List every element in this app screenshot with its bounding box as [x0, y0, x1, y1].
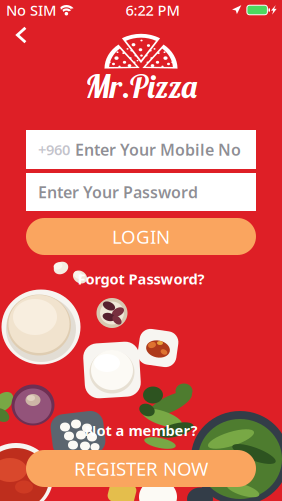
staticText: +960 — [38, 140, 70, 159]
staticText: Mr.Pizza — [85, 66, 197, 106]
button[interactable]: REGISTER NOW — [26, 450, 256, 487]
staticText: REGISTER NOW — [74, 456, 208, 481]
button[interactable]: Forgot Password? — [71, 266, 210, 291]
staticText: 6:22 PM — [125, 0, 179, 20]
staticText: Enter Your Password — [38, 181, 198, 203]
button[interactable]: Not a member? — [78, 417, 203, 443]
staticText: Not a member? — [84, 420, 197, 440]
button[interactable]: LOGIN — [26, 218, 256, 255]
staticText: LOGIN — [112, 224, 170, 249]
staticText: Enter Your Mobile No — [75, 139, 241, 160]
staticText: Forgot Password? — [77, 269, 204, 288]
staticText: No SIM — [6, 0, 56, 20]
button[interactable]: Back — [0, 20, 39, 48]
